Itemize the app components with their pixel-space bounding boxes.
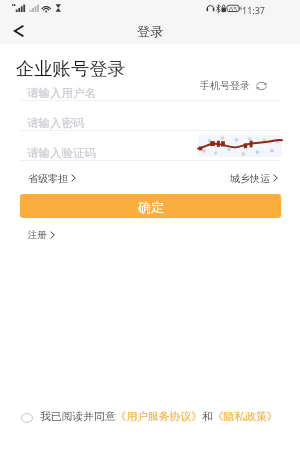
staticText: 65 xyxy=(229,5,238,15)
button[interactable]: 请输入验证码 xyxy=(0,131,300,160)
staticText: 注册 xyxy=(28,229,47,241)
button[interactable]: 请输入密码 xyxy=(0,101,300,130)
button[interactable]: Refresh captcha xyxy=(198,135,282,157)
staticText: 11:37 xyxy=(242,4,266,16)
staticText: 确定 xyxy=(138,199,164,215)
button[interactable]: 城乡快运 xyxy=(230,172,278,184)
staticText: 请输入密码 xyxy=(27,116,85,130)
button[interactable]: 确定 xyxy=(20,194,281,218)
staticText: 企业账号登录 xyxy=(16,57,126,80)
button[interactable]: 省级零担 xyxy=(28,172,76,184)
button[interactable]: 注册 xyxy=(28,229,55,241)
button[interactable]: 手机号登录 xyxy=(200,79,267,92)
staticText: 城乡快运 xyxy=(230,172,270,184)
button[interactable]: Switch login mode xyxy=(255,80,267,92)
button[interactable]: 请输入用户名 xyxy=(0,71,300,100)
button[interactable]: 我已阅读并同意《用户服务协议》和《隐私政策》 xyxy=(40,410,278,424)
staticText: 手机号登录 xyxy=(200,79,250,92)
button[interactable]: Agree to terms xyxy=(20,411,34,424)
staticText: 省级零担 xyxy=(28,172,68,184)
staticText: 登录 xyxy=(137,23,164,40)
button[interactable]: Back xyxy=(3,18,35,44)
staticText: 请输入验证码 xyxy=(27,146,96,160)
staticText: 请输入用户名 xyxy=(27,86,96,100)
